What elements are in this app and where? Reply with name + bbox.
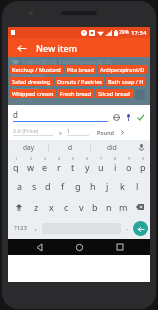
- staticText: Pound: [97, 129, 115, 136]
- staticText: .: [126, 223, 128, 233]
- button[interactable]: n: [102, 196, 116, 217]
- button[interactable]: 3: [38, 154, 52, 175]
- button[interactable]: l: [130, 175, 145, 196]
- button[interactable]: Back: [14, 41, 28, 55]
- button[interactable]: Confirm: [136, 113, 145, 122]
- staticText: 0: [142, 156, 145, 161]
- button[interactable]: Back: [29, 239, 49, 255]
- staticText: f: [61, 180, 65, 192]
- button[interactable]: 2: [23, 154, 38, 175]
- button[interactable]: Change unit: [119, 129, 126, 136]
- staticText: r: [57, 161, 61, 173]
- button[interactable]: Fresh bread: [58, 89, 94, 98]
- button[interactable]: Home: [69, 239, 89, 255]
- staticText: q: [13, 161, 19, 173]
- staticText: a: [17, 180, 23, 192]
- button[interactable]: Enter: [133, 221, 148, 236]
- staticText: u: [98, 161, 104, 173]
- button[interactable]: a: [13, 175, 27, 196]
- button[interactable]: Salad dressing: [10, 77, 53, 86]
- staticText: 29%: [119, 29, 129, 36]
- button[interactable]: Translate: [112, 113, 121, 122]
- staticText: 3 items ($7.50), 3 items crossed ($0.00): [22, 59, 113, 66]
- button[interactable]: 8: [108, 154, 122, 175]
- button[interactable]: did: [91, 140, 132, 154]
- button[interactable]: h: [85, 175, 100, 196]
- button[interactable]: Period: [121, 219, 133, 237]
- staticText: Hot chocolate: [12, 73, 45, 80]
- staticText: b: [92, 201, 98, 213]
- button[interactable]: Voice typing: [132, 140, 150, 154]
- button[interactable]: z: [29, 196, 44, 217]
- staticText: 0.0 (Price): [13, 127, 39, 134]
- button[interactable]: 9: [122, 154, 136, 175]
- button[interactable]: Recents: [110, 239, 130, 255]
- staticText: h: [90, 180, 96, 192]
- staticText: v: [79, 201, 84, 213]
- staticText: did: [107, 143, 117, 152]
- staticText: w: [27, 161, 35, 173]
- staticText: x: [49, 201, 54, 213]
- staticText: k: [120, 180, 125, 192]
- button[interactable]: j: [100, 175, 115, 196]
- staticText: ?123: [14, 224, 27, 232]
- staticText: ,: [35, 223, 37, 233]
- staticText: j: [106, 180, 109, 192]
- staticText: y: [85, 161, 90, 173]
- button[interactable]: 4: [52, 154, 66, 175]
- staticText: o: [126, 161, 132, 173]
- staticText: 2: [30, 156, 33, 161]
- staticText: Salad dressing: [12, 78, 51, 85]
- button[interactable]: d: [41, 175, 55, 196]
- button[interactable]: ?123: [10, 219, 30, 237]
- staticText: 17:54: [131, 29, 147, 37]
- button[interactable]: Shift: [8, 196, 29, 217]
- staticText: x: [59, 129, 62, 136]
- button[interactable]: Voice input: [124, 113, 133, 122]
- staticText: 4: [58, 156, 61, 161]
- button[interactable]: d: [49, 140, 90, 154]
- button[interactable]: k: [115, 175, 130, 196]
- button[interactable]: m: [116, 196, 130, 217]
- staticText: 5: [72, 156, 75, 161]
- button[interactable]: Ketchup / Mustard: [10, 65, 63, 74]
- staticText: s: [32, 180, 37, 192]
- button[interactable]: 6: [80, 154, 94, 175]
- staticText: l: [136, 180, 139, 192]
- staticText: Fresh bread: [60, 90, 92, 97]
- button[interactable]: x: [44, 196, 59, 217]
- staticText: 7: [100, 156, 103, 161]
- button[interactable]: day: [8, 140, 48, 154]
- button[interactable]: Pita bread: [65, 65, 96, 74]
- staticText: 6: [86, 156, 89, 161]
- button[interactable]: Comma: [30, 219, 42, 237]
- staticText: Whipped cream: [12, 90, 54, 97]
- button[interactable]: Bath soap / H: [106, 77, 146, 86]
- staticText: d: [68, 143, 72, 152]
- staticText: 1: [67, 127, 89, 134]
- button[interactable]: f: [55, 175, 70, 196]
- button[interactable]: Donuts / Pastries: [55, 77, 104, 86]
- staticText: z: [34, 201, 39, 213]
- staticText: Sliced bread: [98, 90, 131, 97]
- button[interactable]: s: [27, 175, 41, 196]
- button[interactable]: 1: [8, 154, 23, 175]
- button[interactable]: g: [70, 175, 85, 196]
- button[interactable]: Backspace: [130, 196, 150, 217]
- button[interactable]: v: [74, 196, 88, 217]
- button[interactable]: c: [59, 196, 74, 217]
- button[interactable]: 0: [136, 154, 150, 175]
- button[interactable]: b: [88, 196, 102, 217]
- button[interactable]: 7: [94, 154, 108, 175]
- staticText: Bath soap / H: [108, 78, 144, 85]
- button[interactable]: Whipped cream: [10, 89, 56, 98]
- staticText: i: [114, 161, 117, 173]
- staticText: t: [71, 161, 75, 173]
- button[interactable]: 5: [66, 154, 80, 175]
- staticText: e: [42, 161, 48, 173]
- staticText: Ketchup / Mustard: [12, 66, 61, 73]
- button[interactable]: Antiperspirant/D: [98, 65, 147, 74]
- button[interactable]: Sliced bread: [96, 89, 133, 98]
